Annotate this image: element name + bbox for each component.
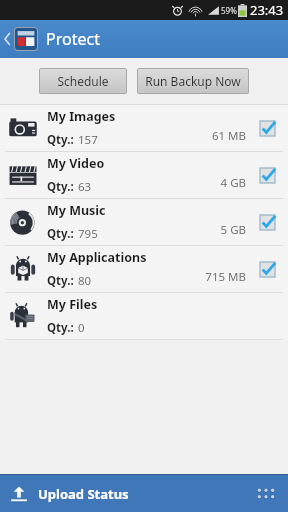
staticText: My Applications — [47, 249, 147, 266]
button[interactable]: My Applications — [0, 246, 288, 292]
button[interactable]: Upload Status — [0, 475, 244, 512]
button[interactable]: Protect — [3, 20, 100, 58]
button[interactable]: More options — [244, 475, 288, 512]
button[interactable]: Toggle My Music backup — [257, 212, 277, 232]
staticText: Qty.: — [47, 179, 74, 195]
button[interactable]: Toggle My Video backup — [257, 165, 277, 185]
staticText: 5 GB — [220, 222, 246, 238]
staticText: Upload Status — [38, 485, 129, 503]
staticText: 61 MB — [211, 128, 246, 144]
staticText: 157 — [78, 132, 98, 148]
staticText: Protect — [46, 28, 100, 50]
staticText: My Music — [47, 202, 106, 219]
staticText: 715 MB — [205, 269, 246, 285]
button[interactable]: Run Backup Now — [137, 68, 249, 94]
staticText: Qty.: — [47, 132, 74, 148]
staticText: Run Backup Now — [145, 73, 241, 89]
button[interactable]: My Images — [0, 105, 288, 151]
staticText: Schedule — [57, 73, 109, 89]
staticText: Qty.: — [47, 226, 74, 242]
button[interactable]: My Music — [0, 199, 288, 245]
staticText: 795 — [78, 226, 98, 242]
staticText: 23:43 — [250, 1, 284, 19]
button[interactable]: My Video — [0, 152, 288, 198]
staticText: My Video — [47, 155, 105, 172]
staticText: 0 — [78, 320, 85, 336]
staticText: 59% — [221, 5, 237, 16]
staticText: My Files — [47, 296, 98, 313]
staticText: 63 — [78, 179, 92, 195]
button[interactable]: Toggle My Images backup — [257, 118, 277, 138]
button[interactable]: Schedule — [39, 68, 127, 94]
staticText: My Images — [47, 108, 116, 125]
staticText: Qty.: — [47, 320, 74, 336]
staticText: 4 GB — [220, 175, 246, 191]
button[interactable]: My Files — [0, 293, 288, 339]
staticText: Qty.: — [47, 273, 74, 289]
button[interactable]: Toggle My Applications backup — [257, 259, 277, 279]
staticText: 80 — [78, 273, 92, 289]
